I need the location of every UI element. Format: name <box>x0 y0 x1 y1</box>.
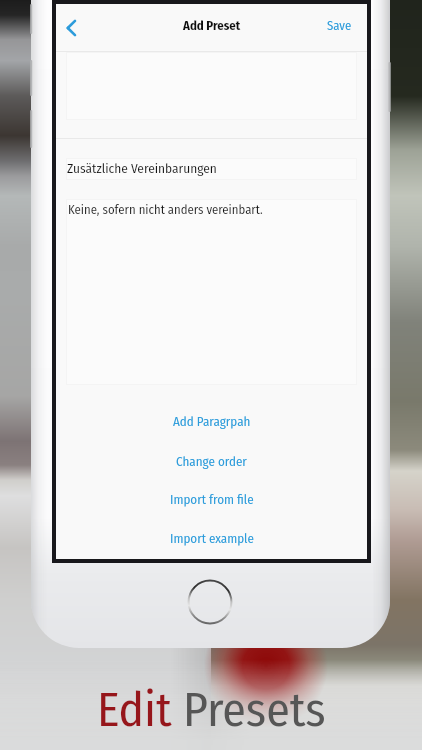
button[interactable]: Import from file <box>56 481 367 519</box>
staticText: Edit <box>97 681 183 738</box>
staticText: Zusätzliche Vereinbarungen <box>67 161 217 177</box>
staticText: Add Preset <box>183 18 241 33</box>
staticText: Save <box>327 18 352 33</box>
staticText: Presets <box>183 681 326 738</box>
button[interactable]: Add Paragrpah <box>56 403 367 441</box>
staticText: Keine, sofern nicht anders vereinbart. <box>68 202 263 217</box>
button[interactable]: Import example <box>56 520 367 558</box>
button[interactable]: Save <box>327 18 352 33</box>
staticText: Import example <box>170 531 254 547</box>
staticText: Change order <box>176 454 247 470</box>
staticText: Import from file <box>170 492 254 508</box>
button[interactable]: Back <box>58 16 82 40</box>
staticText: Add Paragrpah <box>173 414 251 430</box>
button[interactable]: Keine, sofern nicht anders vereinbart. <box>66 199 357 385</box>
button[interactable]: Change order <box>56 443 367 481</box>
button[interactable]: Zusätzliche Vereinbarungen <box>66 158 357 180</box>
